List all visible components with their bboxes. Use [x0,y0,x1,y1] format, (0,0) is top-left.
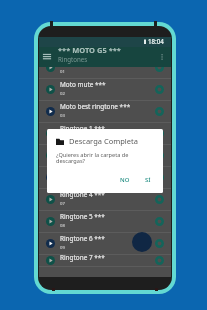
staticText: SÍ [145,176,151,184]
staticText: Ringtone 7 *** [60,253,105,262]
staticText: Ringtone 1 *** [60,124,105,133]
button[interactable]: Moto best ringtone *** [39,101,171,123]
staticText: Ringtone 4 *** [60,190,105,199]
staticText: 05 [60,156,65,162]
staticText: Ringtone 2 *** [60,146,105,155]
staticText: 08 [60,222,65,228]
button[interactable]: Moto G5 *** [39,67,171,79]
button[interactable]: Ringtone 1 *** [39,123,171,145]
button[interactable]: Add ringtone [132,232,152,252]
staticText: Descarga Completa [69,136,138,146]
staticText: 03 [60,112,65,118]
button[interactable]: More options [157,52,167,62]
staticText: Ringtone 6 *** [60,234,105,243]
button[interactable]: SÍ [142,174,154,186]
button[interactable]: Ringtone 6 *** [39,233,171,255]
button[interactable]: Ringtone 5 *** [39,211,171,233]
staticText: Ringtones [58,55,88,63]
button[interactable]: Ringtone 4 *** [39,189,171,211]
button[interactable]: Ringtone 7 *** [39,255,171,267]
staticText: ¿Quieres abrir la carpeta de descargas? [56,151,156,165]
staticText: 07 [60,200,65,206]
staticText: 02 [60,90,65,96]
staticText: 01 [60,68,65,74]
staticText: Moto mute *** [60,80,106,89]
staticText: 18:04 [148,37,164,45]
button[interactable]: Moto mute *** [39,79,171,101]
staticText: Ringtone 5 *** [60,212,105,221]
staticText: NO [120,176,130,184]
button[interactable]: Open navigation drawer [41,50,53,64]
button[interactable]: NO [117,174,133,186]
staticText: 09 [60,244,65,250]
staticText: *** MOTO G5 *** [58,45,121,55]
button[interactable]: Ringtone 3 *** [39,167,171,189]
button[interactable]: Ringtone 2 *** [39,145,171,167]
staticText: Moto best ringtone *** [60,102,131,111]
